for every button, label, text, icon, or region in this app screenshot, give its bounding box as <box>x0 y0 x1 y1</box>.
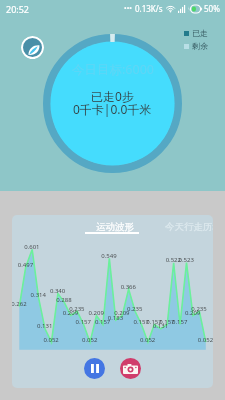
staticText: 已走 <box>192 28 208 38</box>
button[interactable]: 今天行走历程 <box>154 215 213 236</box>
staticText: 已走0步 <box>91 88 134 104</box>
button[interactable]: 运动波形 <box>75 215 154 236</box>
staticText: 0.13K/s <box>135 3 163 14</box>
staticText: 20:52 <box>6 3 30 15</box>
staticText: 今日目标:6000 <box>72 61 154 78</box>
staticText: 剩余 <box>192 41 208 51</box>
staticText: 今天行走历程 <box>165 221 213 233</box>
staticText: 运动波形 <box>96 221 134 233</box>
button[interactable]: Profile <box>21 36 44 59</box>
button[interactable]: Pause <box>84 358 105 379</box>
button[interactable]: Camera <box>120 358 141 379</box>
staticText: 50% <box>204 3 220 14</box>
staticText: ••• <box>124 4 132 14</box>
staticText: 0千卡|0.0千米 <box>73 101 152 117</box>
